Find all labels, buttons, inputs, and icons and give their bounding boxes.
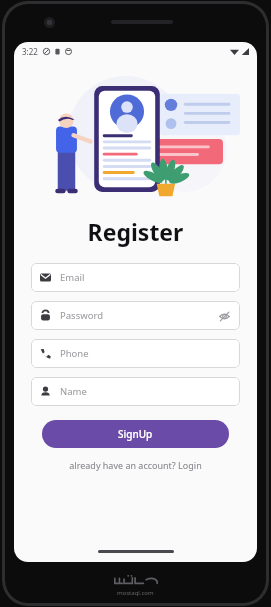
staticText: Password (60, 309, 103, 322)
button[interactable]: Password (31, 301, 240, 330)
staticText: 3:22 (22, 46, 38, 57)
staticText: SignUp (118, 427, 153, 441)
staticText: Email (60, 271, 85, 284)
staticText: mostaql.com (117, 589, 154, 597)
staticText: Register (14, 216, 257, 247)
button[interactable]: Phone (31, 339, 240, 368)
staticText: Name (60, 385, 87, 398)
staticText: Phone (60, 347, 89, 360)
button[interactable]: Email (31, 263, 240, 292)
button[interactable]: Show password (217, 309, 231, 323)
button[interactable]: SignUp (42, 420, 229, 448)
button[interactable]: Name (31, 377, 240, 406)
button[interactable]: already have an account? Login (14, 459, 257, 471)
